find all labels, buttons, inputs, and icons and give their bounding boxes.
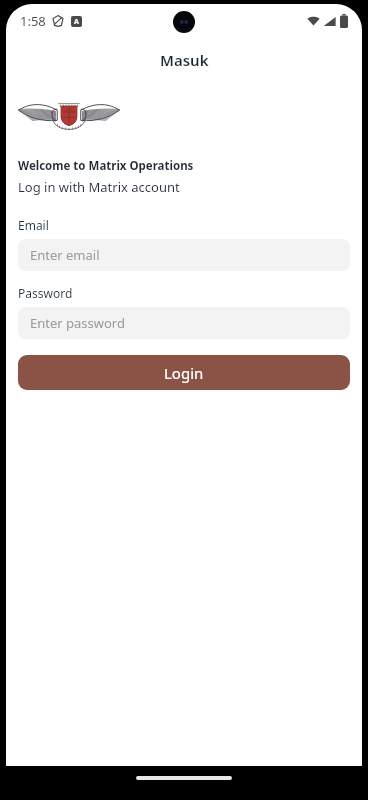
staticText: 1:58 <box>20 12 46 30</box>
button[interactable]: Password input field <box>18 307 350 339</box>
staticText: Welcome to Matrix Operations <box>18 158 194 174</box>
other: Matrix Operations logo <box>18 96 120 138</box>
staticText: Masuk <box>160 50 209 70</box>
staticText: Login <box>164 363 204 383</box>
staticText: Log in with Matrix account <box>18 178 180 196</box>
staticText: Password <box>18 285 73 301</box>
staticText: Enter email <box>30 246 100 264</box>
staticText: Enter password <box>30 314 125 332</box>
staticText: Email <box>18 217 49 233</box>
staticText: A <box>74 17 79 27</box>
button[interactable]: Email input field <box>18 239 350 271</box>
button[interactable]: Login <box>18 355 350 390</box>
